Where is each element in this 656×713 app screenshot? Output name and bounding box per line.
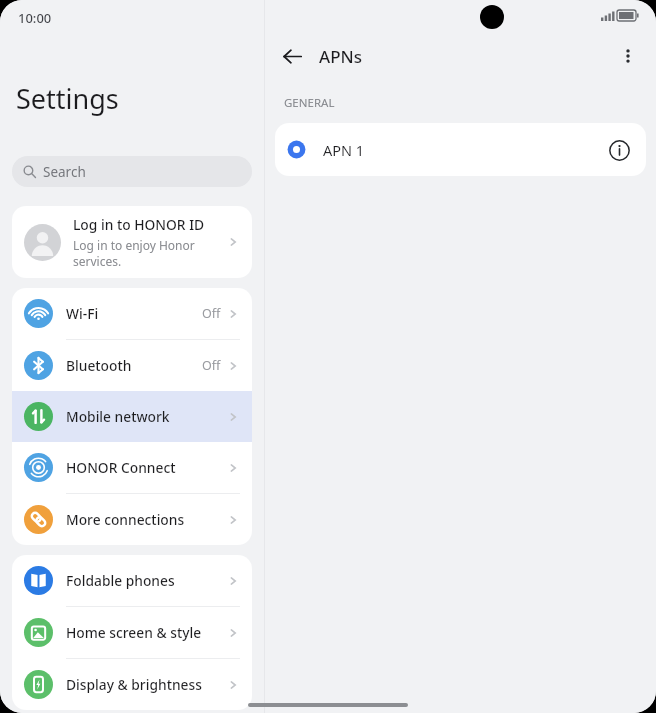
button[interactable]: Home screen & style [12,607,252,658]
button[interactable]: Back [274,38,310,74]
button[interactable]: More options [610,38,646,74]
button[interactable]: Mobile network [12,391,252,442]
staticText: Wi-Fi [66,304,99,323]
button[interactable]: Wi-Fi [12,288,252,339]
button[interactable]: APN 1 [275,123,646,176]
staticText: APNs [319,45,362,68]
button[interactable]: Search [12,156,252,187]
staticText: Log in to HONOR ID [73,215,205,234]
staticText: Display & brightness [66,675,202,694]
button[interactable]: APN details [604,135,634,165]
staticText: Settings [16,80,119,117]
staticText: HONOR Connect [66,458,176,477]
staticText: Foldable phones [66,571,175,590]
staticText: GENERAL [284,95,335,111]
staticText: More connections [66,510,185,529]
staticText: Search [43,163,86,181]
button[interactable]: More connections [12,494,252,545]
staticText: Off [202,357,221,374]
button[interactable]: Log in to HONOR ID [12,206,252,278]
staticText: Mobile network [66,407,170,426]
staticText: Log in to enjoy Honor [73,237,195,253]
staticText: Bluetooth [66,356,132,375]
staticText: APN 1 [323,140,365,160]
staticText: 10:00 [18,9,52,27]
button[interactable]: HONOR Connect [12,442,252,493]
button[interactable]: Foldable phones [12,555,252,606]
staticText: services. [73,253,122,269]
button[interactable]: Display & brightness [12,659,252,710]
button[interactable]: Bluetooth [12,340,252,391]
staticText: Off [202,305,221,322]
staticText: Home screen & style [66,623,202,642]
